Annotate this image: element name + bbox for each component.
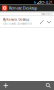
button[interactable]: Search <box>44 81 52 89</box>
staticText: Favorites <box>41 12 52 16</box>
staticText: 4:21 <box>46 0 53 5</box>
button[interactable]: Add desktop <box>2 81 10 89</box>
button[interactable]: My Remote Desktop <box>0 16 54 27</box>
staticText: My Remote Desktop <box>3 18 30 21</box>
staticText: user-name-somewhere <box>3 22 33 25</box>
staticText: Remote Desktop <box>9 5 37 11</box>
